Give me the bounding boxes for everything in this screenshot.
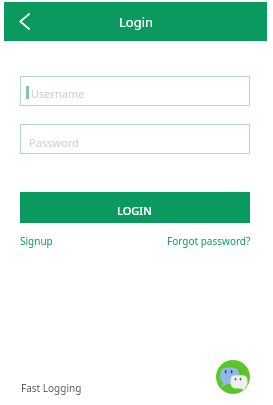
staticText: Username — [31, 86, 85, 101]
staticText: Password — [29, 135, 79, 150]
staticText: Login — [119, 13, 154, 31]
staticText: Fast Logging — [21, 381, 82, 395]
staticText: Signup — [20, 234, 53, 248]
button[interactable]: Signup — [20, 234, 53, 248]
button[interactable]: Back — [12, 9, 36, 33]
staticText: Forgot password? — [167, 234, 251, 248]
button[interactable]: Password — [20, 124, 250, 154]
button[interactable]: Forgot password? — [167, 234, 251, 248]
button[interactable]: LOGIN — [20, 192, 250, 223]
button[interactable]: WeChat login — [216, 360, 250, 394]
button[interactable]: Username — [20, 76, 250, 106]
staticText: LOGIN — [117, 203, 152, 218]
